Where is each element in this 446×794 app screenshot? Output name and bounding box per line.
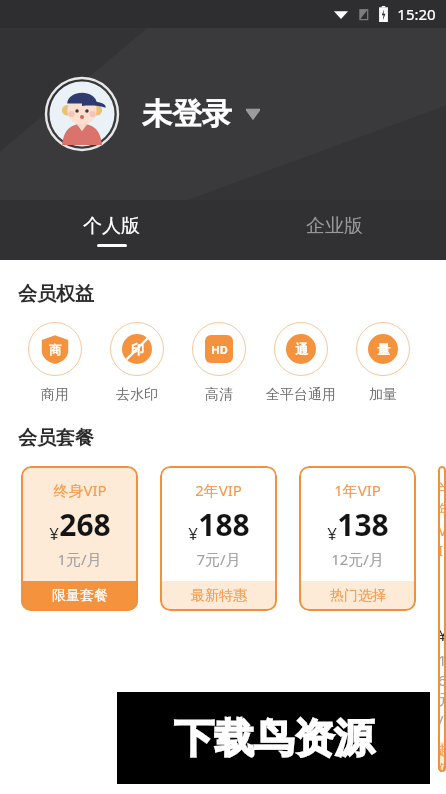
staticText: 去水印 — [116, 386, 158, 404]
button[interactable]: 半年VIP — [438, 466, 446, 772]
staticText: 最新特惠 — [191, 587, 247, 605]
staticText: 1年VIP — [334, 480, 381, 500]
staticText: 企业版 — [306, 214, 363, 238]
staticText: 7元/月 — [196, 549, 241, 569]
staticText: 个人版 — [83, 214, 140, 238]
staticText: 268 — [59, 504, 111, 545]
staticText: 终身VIP — [53, 480, 107, 500]
staticText: ¥ — [49, 522, 59, 545]
button[interactable]: HD — [178, 322, 260, 404]
staticText: 138 — [337, 504, 389, 545]
staticText: 12元/月 — [331, 549, 384, 569]
staticText: 15:20 — [397, 4, 436, 24]
staticText: 下载鸟资源 — [174, 713, 374, 763]
button[interactable]: 商 — [14, 322, 96, 404]
button[interactable]: 印 — [96, 322, 178, 404]
staticText: 高清 — [205, 386, 233, 404]
other: VIP 等级 — [242, 103, 264, 125]
button[interactable]: 量 — [342, 322, 424, 404]
staticText: 1元/月 — [57, 549, 102, 569]
staticText: 未登录 — [142, 95, 232, 133]
staticText: ¥ — [188, 522, 198, 545]
staticText: 通 — [295, 341, 308, 357]
staticText: 16元/月 — [438, 650, 446, 730]
staticText: 全平台通用 — [266, 386, 336, 404]
staticText: 2年VIP — [195, 480, 242, 500]
staticText: 加量 — [369, 386, 397, 404]
staticText: HD — [211, 342, 228, 357]
staticText: 会员套餐 — [18, 426, 94, 450]
staticText: 188 — [198, 504, 250, 545]
staticText: 印 — [131, 341, 144, 357]
staticText: 超值 — [438, 742, 446, 772]
staticText: 量 — [377, 341, 390, 357]
button[interactable]: 终身VIP — [21, 466, 138, 611]
staticText: ¥ — [438, 623, 446, 646]
staticText: ¥ — [327, 522, 337, 545]
staticText: 限量套餐 — [52, 587, 108, 605]
staticText: 会员权益 — [18, 282, 94, 306]
button[interactable]: 企业版 — [223, 200, 446, 260]
staticText: 商 — [49, 342, 61, 357]
button[interactable]: 通 — [260, 322, 342, 404]
button[interactable]: 1年VIP — [299, 466, 416, 611]
button[interactable]: 个人版 — [0, 200, 223, 260]
button[interactable]: 2年VIP — [160, 466, 277, 611]
staticText: 热门选择 — [330, 587, 386, 605]
staticText: 商用 — [41, 386, 69, 404]
staticText: 半年VIP — [438, 480, 446, 560]
